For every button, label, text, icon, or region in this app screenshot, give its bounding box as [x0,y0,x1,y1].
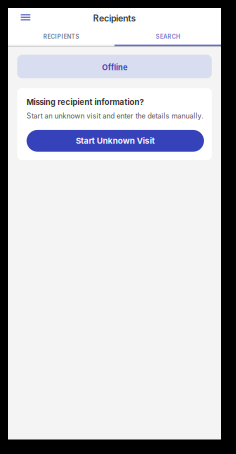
button[interactable]: Menu [15,8,36,29]
staticText: Offline [102,63,127,72]
staticText: RECIPIENTS [43,33,79,40]
staticText: Recipients [93,13,136,24]
staticText: Start Unknown Visit [76,136,155,146]
staticText: Missing recipient information? [27,97,144,107]
staticText: Start an unknown visit and enter the det… [27,112,204,120]
button[interactable]: Start Unknown Visit [27,130,204,152]
staticText: SEARCH [156,33,180,40]
button[interactable]: RECIPIENTS [8,29,114,45]
button[interactable]: SEARCH [114,29,221,45]
